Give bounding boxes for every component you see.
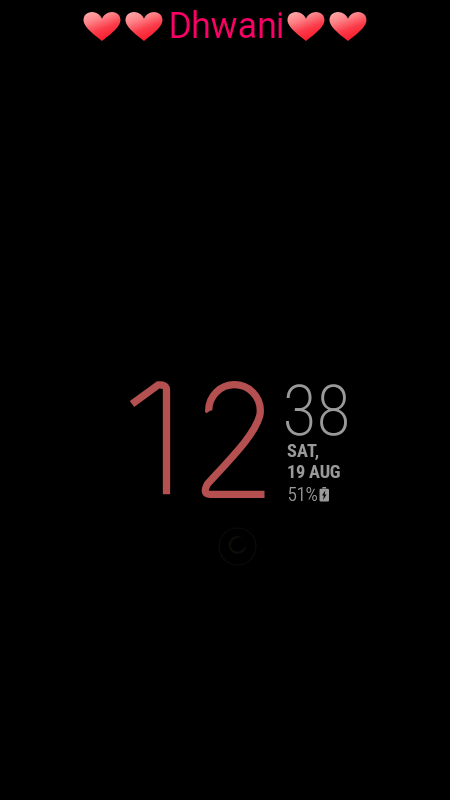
button[interactable]: Notifications xyxy=(218,527,257,566)
button[interactable]: Clock 12:38, Saturday 19 August, battery… xyxy=(110,370,360,515)
button[interactable]: Dhwani xyxy=(80,6,372,46)
